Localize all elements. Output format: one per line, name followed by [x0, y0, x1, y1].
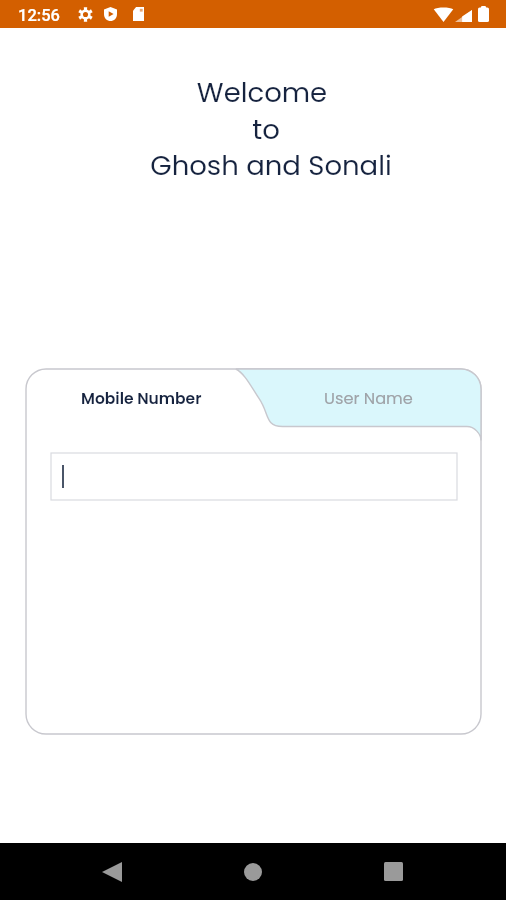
staticText: to: [13, 110, 506, 148]
staticText: User Name: [324, 387, 413, 410]
staticText: Welcome: [9, 73, 506, 111]
button[interactable]: Recent apps: [355, 843, 431, 900]
button[interactable]: Mobile Number: [26, 369, 256, 427]
button[interactable]: User Name: [256, 369, 481, 427]
staticText: Ghosh and Sonali: [18, 146, 506, 184]
button[interactable]: Home: [215, 843, 291, 900]
staticText: Mobile Number: [81, 388, 202, 410]
staticText: 12:56: [18, 6, 60, 25]
button[interactable]: [51, 453, 457, 500]
button[interactable]: Back: [74, 843, 150, 900]
